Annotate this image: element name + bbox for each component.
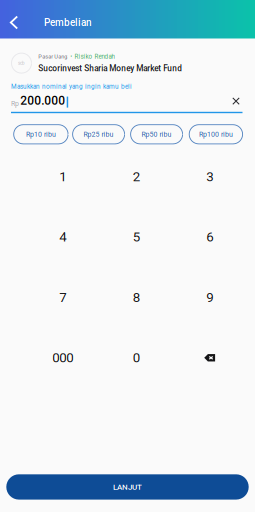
button[interactable]: Rp50 ribu [131,125,183,144]
staticText: Rp [11,99,19,108]
staticText: 3 [206,169,213,184]
button[interactable]: 7 [26,267,99,328]
staticText: Pembelian [44,17,92,28]
staticText: 4 [59,229,66,245]
staticText: Rp10 ribu [26,130,56,138]
staticText: Masukkan nominal yang ingin kamu beli [11,83,132,90]
staticText: Rp25 ribu [84,130,114,138]
staticText: LANJUT [113,482,142,492]
staticText: 6 [206,229,213,245]
button[interactable]: 4 [26,207,99,267]
button[interactable]: 3 [173,146,246,207]
staticText: 1 [59,169,66,184]
staticText: Rp50 ribu [142,130,172,138]
button[interactable]: 2 [99,146,173,207]
staticText: 0 [133,350,140,366]
button[interactable]: Rp25 ribu [73,125,125,144]
button[interactable]: 1 [26,146,99,207]
staticText: Risiko Rendah [74,53,114,60]
staticText: 200.000 [20,93,65,108]
staticText: Sucorinvest Sharia Money Market Fund [38,64,182,73]
staticText: 000 [52,350,73,366]
staticText: Rp100 ribu [199,130,233,138]
button[interactable]: LANJUT [6,474,249,500]
button[interactable]: 0 [99,328,173,388]
button[interactable]: 9 [173,267,246,328]
button[interactable]: 000 [26,328,99,388]
staticText: • [70,53,72,60]
staticText: 9 [206,290,213,305]
button[interactable]: Rp100 ribu [189,125,243,144]
button[interactable]: Back [5,10,23,34]
button[interactable]: 8 [99,267,173,328]
button[interactable]: Clear amount [229,95,242,108]
staticText: 8 [133,290,140,305]
button[interactable]: Rp10 ribu [14,125,68,144]
staticText: 7 [59,290,66,305]
button[interactable]: 5 [99,207,173,267]
staticText: scb [18,60,25,66]
staticText: Pasar Uang [38,53,67,60]
staticText: 5 [133,229,140,245]
button[interactable]: 6 [173,207,246,267]
button[interactable]: Delete [173,328,246,388]
staticText: 2 [133,169,140,184]
